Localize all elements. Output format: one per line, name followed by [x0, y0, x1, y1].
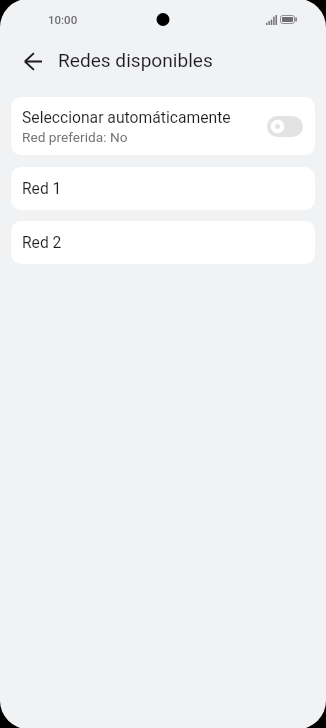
staticText: Seleccionar automáticamente [22, 108, 231, 126]
button[interactable]: Seleccionar automáticamente [11, 97, 315, 155]
button[interactable]: Red 2 [11, 221, 315, 264]
button[interactable]: Atrás [16, 44, 50, 78]
staticText: Redes disponibles [58, 49, 213, 71]
button[interactable]: Seleccionar automáticamente [267, 116, 303, 137]
button[interactable]: Red 1 [11, 167, 315, 210]
staticText: Red 1 [22, 180, 62, 198]
staticText: Red 2 [22, 234, 62, 252]
staticText: 10:00 [48, 13, 78, 26]
staticText: Red preferida: No [22, 129, 128, 145]
